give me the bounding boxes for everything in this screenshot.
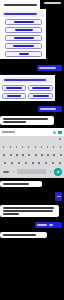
button[interactable]: [16, 159, 21, 166]
button[interactable]: [2, 85, 26, 91]
button[interactable]: [0, 116, 54, 125]
button[interactable]: [0, 0, 40, 9]
button[interactable]: [2, 93, 26, 99]
button[interactable]: [0, 205, 59, 217]
button[interactable]: [58, 151, 63, 158]
button[interactable]: Send: [54, 168, 62, 176]
button[interactable]: [57, 159, 62, 166]
button[interactable]: [1, 151, 6, 158]
button[interactable]: [20, 143, 25, 150]
button[interactable]: [45, 143, 50, 150]
button[interactable]: Attach: [53, 131, 56, 134]
button[interactable]: [20, 151, 25, 158]
button[interactable]: [38, 106, 62, 112]
button[interactable]: [0, 232, 47, 238]
button[interactable]: [14, 151, 19, 158]
button[interactable]: [51, 143, 56, 150]
button[interactable]: [33, 151, 38, 158]
button[interactable]: [8, 143, 13, 150]
button[interactable]: [2, 159, 7, 166]
button[interactable]: [43, 159, 48, 166]
button[interactable]: [8, 151, 13, 158]
button[interactable]: [26, 151, 31, 158]
button[interactable]: [35, 222, 62, 228]
button[interactable]: [23, 159, 28, 166]
button[interactable]: [5, 51, 42, 57]
button[interactable]: [30, 159, 35, 166]
button[interactable]: [2, 11, 44, 17]
button[interactable]: Period: [48, 167, 52, 176]
button[interactable]: [9, 159, 14, 166]
button[interactable]: [5, 43, 42, 49]
button[interactable]: [0, 181, 42, 187]
button[interactable]: [36, 159, 41, 166]
button[interactable]: [39, 143, 44, 150]
button[interactable]: [14, 143, 19, 150]
button[interactable]: [33, 143, 38, 150]
button[interactable]: [26, 143, 31, 150]
button[interactable]: [55, 192, 62, 201]
button[interactable]: [28, 93, 53, 99]
button[interactable]: Send message: [58, 131, 62, 134]
button[interactable]: [5, 27, 42, 33]
button[interactable]: [28, 85, 53, 91]
button[interactable]: Switch to letters: [2, 167, 9, 176]
button[interactable]: [37, 65, 62, 71]
button[interactable]: [50, 159, 55, 166]
button[interactable]: [5, 35, 42, 41]
button[interactable]: Comma: [11, 167, 15, 176]
button[interactable]: [39, 151, 44, 158]
button[interactable]: [1, 143, 6, 150]
button[interactable]: [2, 77, 53, 83]
button[interactable]: [58, 143, 63, 150]
button[interactable]: [51, 151, 56, 158]
button[interactable]: [5, 19, 42, 25]
button[interactable]: [45, 151, 50, 158]
